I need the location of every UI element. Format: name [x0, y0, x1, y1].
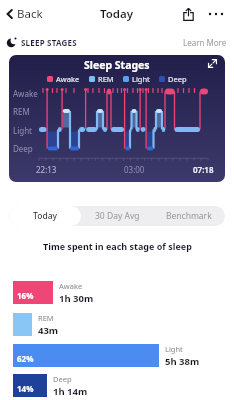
staticText: 43m	[38, 324, 59, 336]
staticText: 1h 14m	[53, 385, 88, 397]
staticText: Light	[165, 344, 183, 354]
staticText: Deep	[168, 74, 187, 84]
staticText: 22:13	[36, 164, 57, 175]
button[interactable]: 16%	[13, 281, 234, 304]
staticText: Today	[33, 210, 57, 222]
button[interactable]	[182, 8, 195, 21]
button[interactable]: REM	[13, 313, 234, 336]
button[interactable]: Back	[5, 6, 43, 22]
staticText: Today	[100, 6, 134, 22]
staticText: REM	[98, 74, 114, 84]
button[interactable]	[208, 7, 225, 21]
button[interactable]: Benchmark	[153, 206, 225, 226]
staticText: 14%	[17, 383, 34, 394]
staticText: Benchmark	[166, 210, 212, 222]
staticText: Time spent in each stage of sleep	[43, 240, 192, 252]
staticText: 1h 30m	[59, 292, 94, 304]
staticText: REM	[13, 106, 30, 117]
staticText: Deep	[53, 374, 72, 384]
button[interactable]: 62%	[13, 344, 234, 367]
button[interactable]: 30 Day Avg	[81, 206, 153, 226]
staticText: 16%	[17, 290, 34, 301]
staticText: REM	[38, 313, 54, 323]
staticText: 03:00	[124, 164, 145, 175]
staticText: 62%	[17, 353, 34, 364]
staticText: Awake	[13, 88, 38, 99]
staticText: Light	[132, 74, 150, 84]
staticText: Awake	[59, 281, 83, 291]
staticText: Sleep Stages	[84, 58, 150, 72]
button[interactable]: 14%	[13, 374, 234, 397]
button[interactable]: Sleep Stages	[9, 55, 225, 182]
staticText: 30 Day Avg	[95, 210, 140, 222]
staticText: 07:18	[193, 164, 214, 175]
button[interactable]: Today	[9, 206, 81, 226]
staticText: Deep	[13, 143, 33, 154]
staticText: 5h 38m	[165, 355, 200, 367]
staticText: Awake	[56, 74, 80, 84]
button[interactable]: Learn More	[183, 37, 227, 47]
staticText: Back	[17, 6, 43, 22]
staticText: SLEEP STAGES	[21, 37, 77, 47]
staticText: Light	[13, 125, 33, 136]
